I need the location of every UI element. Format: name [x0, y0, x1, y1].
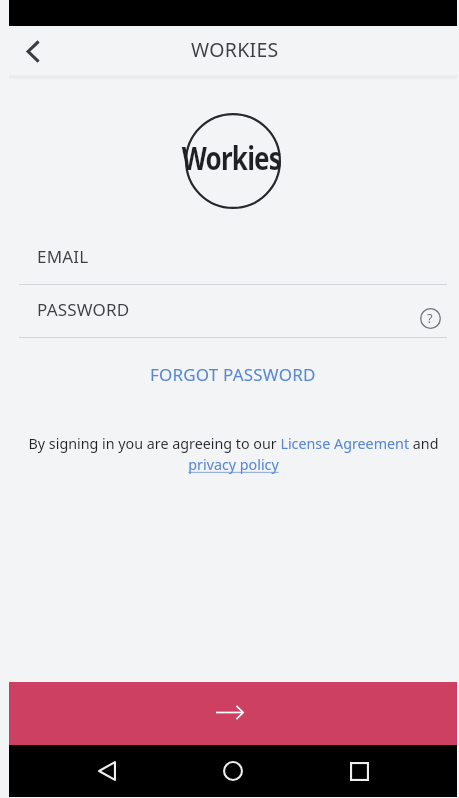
button[interactable]: FORGOT PASSWORD [136, 357, 330, 392]
button[interactable]: PASSWORD [19, 292, 447, 337]
staticText: PASSWORD [37, 298, 130, 321]
button[interactable]: Recent apps [337, 745, 381, 797]
button[interactable]: EMAIL [19, 239, 447, 284]
button[interactable]: Sign in [9, 682, 457, 745]
button[interactable]: Home [211, 745, 255, 797]
staticText: FORGOT PASSWORD [150, 363, 316, 386]
button[interactable]: Password help [413, 301, 447, 335]
button[interactable]: Navigate back [11, 31, 53, 73]
staticText: Workies [182, 135, 281, 180]
staticText: EMAIL [37, 245, 89, 268]
button[interactable]: Back [85, 745, 129, 797]
staticText: ? [427, 309, 433, 327]
staticText: By signing in you are agreeing to our Li… [15, 434, 452, 475]
staticText: WORKIES [191, 36, 279, 63]
